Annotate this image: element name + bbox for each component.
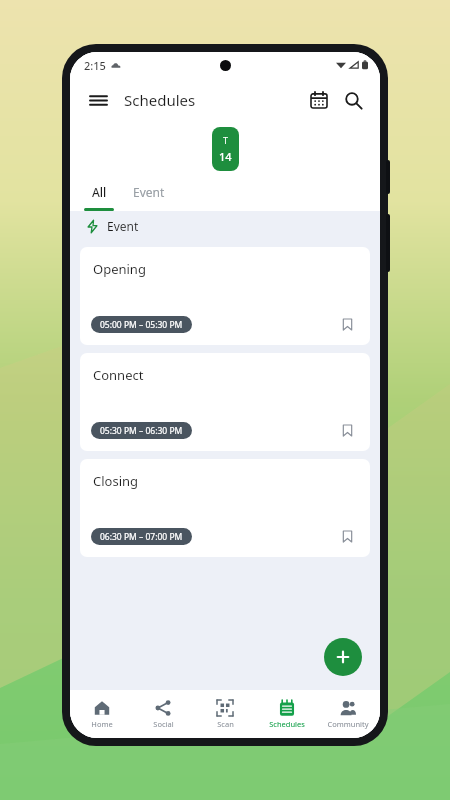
button[interactable]: Community — [318, 690, 378, 738]
staticText: 2:15 — [84, 58, 106, 73]
button[interactable]: T — [212, 127, 239, 171]
button[interactable]: Bookmark — [334, 523, 360, 549]
button[interactable]: Closing — [80, 459, 370, 557]
button[interactable]: Menu — [82, 84, 114, 116]
staticText: Schedules — [124, 90, 196, 110]
button[interactable]: Search — [336, 83, 370, 117]
button[interactable]: Calendar — [302, 83, 336, 117]
staticText: Event — [133, 184, 165, 200]
button[interactable]: Opening — [80, 247, 370, 345]
button[interactable]: Bookmark — [334, 417, 360, 443]
staticText: T — [223, 134, 229, 146]
staticText: Opening — [93, 260, 146, 278]
button[interactable]: Bookmark — [334, 311, 360, 337]
staticText: Home — [91, 719, 113, 729]
staticText: Event — [107, 218, 139, 234]
button[interactable]: Add schedule — [324, 638, 362, 676]
button[interactable]: Event — [124, 176, 174, 208]
staticText: 05:00 PM – 05:30 PM — [100, 319, 183, 331]
staticText: All — [92, 184, 107, 200]
button[interactable]: Scan — [195, 690, 255, 738]
staticText: Social — [153, 719, 174, 729]
button[interactable]: Connect — [80, 353, 370, 451]
staticText: Closing — [93, 472, 139, 490]
button[interactable]: Home — [72, 690, 132, 738]
staticText: Schedules — [269, 719, 305, 729]
staticText: 06:30 PM – 07:00 PM — [100, 531, 183, 543]
staticText: Community — [327, 719, 369, 729]
staticText: 14 — [219, 149, 232, 164]
button[interactable]: Social — [133, 690, 193, 738]
staticText: Connect — [93, 366, 144, 384]
button[interactable]: All — [82, 176, 116, 208]
button[interactable]: Schedules — [257, 690, 317, 738]
staticText: 05:30 PM – 06:30 PM — [100, 425, 183, 437]
staticText: Scan — [217, 719, 234, 729]
